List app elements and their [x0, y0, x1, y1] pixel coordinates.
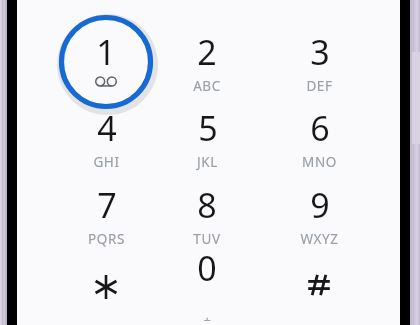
- button[interactable]: 7 PQRS: [56, 177, 156, 253]
- button[interactable]: pound: [269, 247, 369, 323]
- button[interactable]: star: [56, 249, 156, 325]
- button[interactable]: 5 JKL: [157, 100, 257, 176]
- button[interactable]: 8 TUV: [157, 177, 257, 253]
- staticText: 5: [198, 105, 218, 151]
- staticText: 7: [97, 182, 117, 228]
- button[interactable]: 1 voicemail: [56, 24, 156, 100]
- staticText: 3: [310, 29, 330, 75]
- staticText: 2: [197, 29, 217, 75]
- staticText: 4: [97, 105, 117, 151]
- staticText: GHI: [93, 153, 120, 171]
- button[interactable]: 2 ABC: [157, 24, 257, 100]
- staticText: 8: [197, 182, 217, 228]
- staticText: WXYZ: [300, 230, 339, 248]
- button[interactable]: 9 WXYZ: [269, 177, 369, 253]
- staticText: PQRS: [88, 230, 125, 248]
- button[interactable]: 3 DEF: [269, 24, 369, 100]
- staticText: 6: [310, 105, 330, 151]
- staticText: MNO: [302, 153, 337, 171]
- button[interactable]: 0 plus: [157, 245, 257, 321]
- staticText: 9: [310, 182, 330, 228]
- staticText: ABC: [193, 77, 221, 95]
- staticText: JKL: [197, 153, 218, 171]
- staticText: DEF: [306, 77, 333, 95]
- button[interactable]: 4 GHI: [56, 100, 156, 176]
- button[interactable]: 6 MNO: [269, 100, 369, 176]
- staticText: +: [203, 311, 212, 321]
- staticText: 1: [96, 29, 116, 75]
- staticText: 0: [197, 245, 217, 291]
- staticText: TUV: [193, 230, 221, 248]
